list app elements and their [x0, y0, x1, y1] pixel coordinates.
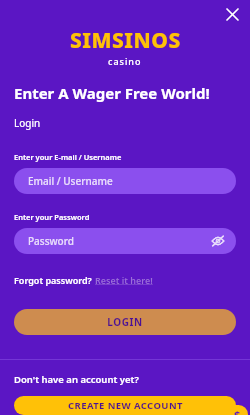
button[interactable]: Bonus — [226, 405, 248, 415]
staticText: SIMSINOS — [70, 26, 181, 55]
button[interactable]: LOGIN — [14, 309, 236, 335]
staticText: Don't have an account yet? — [14, 373, 139, 386]
staticText: Enter your Password — [14, 212, 90, 222]
staticText: Login — [14, 116, 41, 130]
staticText: CREATE NEW ACCOUNT — [68, 399, 183, 412]
staticText: Password — [28, 234, 210, 248]
button[interactable]: Password — [14, 228, 236, 254]
staticText: Email / Username — [28, 174, 113, 188]
staticText: Forgot password? — [14, 274, 95, 286]
button[interactable]: CREATE NEW ACCOUNT — [14, 396, 236, 415]
button[interactable]: Reset it here! — [95, 274, 153, 286]
button[interactable]: Show password — [210, 233, 226, 249]
staticText: $ — [234, 407, 241, 415]
button[interactable]: Close — [222, 4, 242, 24]
staticText: casino — [108, 55, 142, 67]
staticText: Enter your E-mail / Username — [14, 152, 122, 162]
button[interactable]: Email / Username — [14, 168, 236, 194]
staticText: LOGIN — [107, 315, 143, 329]
staticText: Reset it here! — [95, 274, 153, 286]
staticText: Enter A Wager Free World! — [14, 83, 210, 103]
